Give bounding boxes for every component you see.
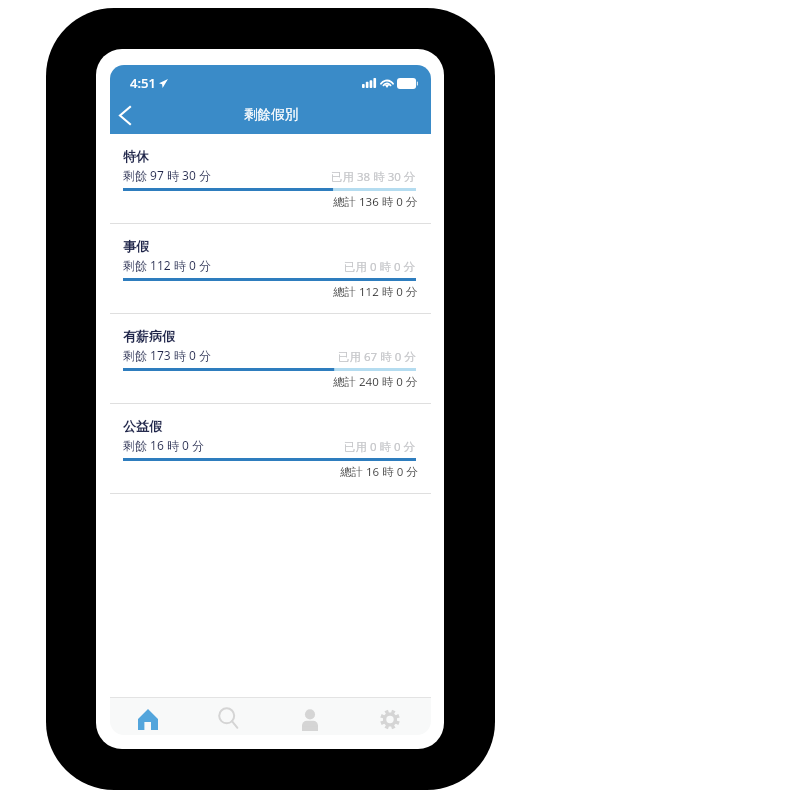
staticText: 有薪病假 — [123, 328, 175, 344]
staticText: 已用 0 時 0 分 — [344, 439, 416, 455]
staticText: 已用 67 時 0 分 — [338, 349, 416, 365]
button[interactable]: 公益假 — [110, 404, 431, 494]
staticText: 剩餘 173 時 0 分 — [123, 347, 211, 363]
staticText: 剩餘 16 時 0 分 — [123, 437, 205, 453]
button[interactable]: Back — [113, 100, 137, 130]
button[interactable]: Settings — [350, 698, 430, 735]
button[interactable]: 有薪病假 — [110, 314, 431, 404]
button[interactable]: 特休 — [110, 134, 431, 224]
staticText: 已用 38 時 30 分 — [331, 169, 416, 185]
button[interactable]: Search — [188, 698, 268, 735]
staticText: 剩餘假別 — [244, 106, 298, 123]
staticText: 事假 — [123, 238, 149, 254]
staticText: 剩餘 112 時 0 分 — [123, 257, 211, 273]
button[interactable]: Home — [110, 698, 188, 735]
button[interactable]: 事假 — [110, 224, 431, 314]
staticText: 總計 136 時 0 分 — [333, 194, 418, 210]
staticText: 總計 16 時 0 分 — [340, 464, 418, 480]
staticText: 公益假 — [123, 418, 162, 434]
staticText: 特休 — [123, 148, 149, 164]
staticText: 剩餘 97 時 30 分 — [123, 167, 211, 183]
staticText: 總計 240 時 0 分 — [333, 374, 418, 390]
button[interactable]: Profile — [270, 698, 350, 735]
staticText: 總計 112 時 0 分 — [333, 284, 418, 300]
staticText: 已用 0 時 0 分 — [344, 259, 416, 275]
staticText: 4:51 — [130, 74, 156, 92]
